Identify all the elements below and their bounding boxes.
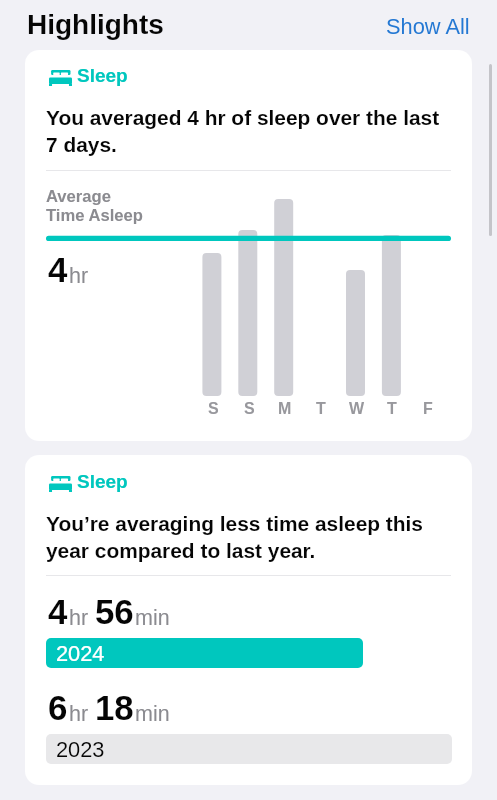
button[interactable]: Show All bbox=[386, 14, 470, 38]
staticText: F bbox=[423, 400, 433, 418]
staticText: Highlights bbox=[27, 9, 164, 40]
staticText: hr bbox=[69, 702, 89, 726]
staticText: Sleep bbox=[77, 65, 128, 86]
staticText: min bbox=[135, 702, 170, 726]
staticText: Show All bbox=[386, 14, 470, 38]
button[interactable]: 2024 bbox=[46, 638, 363, 668]
staticText: hr bbox=[69, 606, 89, 630]
staticText: S bbox=[244, 400, 255, 418]
staticText: 56 bbox=[95, 592, 134, 631]
staticText: T bbox=[387, 400, 397, 418]
staticText: T bbox=[316, 400, 326, 418]
button[interactable]: Sleep bbox=[25, 455, 472, 785]
staticText: 2024 bbox=[56, 641, 105, 665]
button[interactable]: 2023 bbox=[46, 734, 452, 764]
staticText: 2023 bbox=[56, 737, 105, 761]
button[interactable]: Sleep bbox=[25, 50, 472, 441]
staticText: W bbox=[349, 400, 365, 418]
staticText: Sleep bbox=[77, 471, 128, 492]
staticText: hr bbox=[69, 264, 89, 288]
staticText: You’re averaging less time asleep this y… bbox=[46, 512, 446, 562]
staticText: 18 bbox=[95, 688, 134, 727]
staticText: S bbox=[208, 400, 219, 418]
staticText: 4 bbox=[48, 592, 68, 631]
staticText: M bbox=[278, 400, 292, 418]
button[interactable]: Highlights bbox=[27, 9, 164, 40]
staticText: You averaged 4 hr of sleep over the last… bbox=[46, 106, 446, 156]
staticText: 4 bbox=[48, 250, 68, 289]
staticText: 6 bbox=[48, 688, 68, 727]
staticText: Average Time Asleep bbox=[46, 187, 143, 225]
staticText: min bbox=[135, 606, 170, 630]
